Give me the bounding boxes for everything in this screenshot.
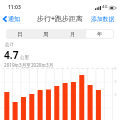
staticText: 通知 <box>8 15 21 23</box>
button[interactable]: 周 <box>33 30 59 38</box>
staticText: 年 <box>97 31 103 38</box>
staticText: 4.7 <box>4 48 19 62</box>
staticText: 总计 <box>5 42 14 48</box>
button[interactable]: 日 <box>7 30 33 38</box>
staticText: 步行+跑步距离 <box>37 14 84 24</box>
staticText: 日 <box>17 31 23 38</box>
staticText: 2019年3月至2020年3月 <box>4 62 54 68</box>
staticText: 公里 <box>20 55 30 61</box>
button[interactable]: 添加数据 <box>91 15 115 22</box>
staticText: 周 <box>43 31 49 38</box>
button[interactable]: 通知 <box>2 14 22 24</box>
staticText: 月 <box>70 31 76 38</box>
button[interactable]: 月 <box>59 30 86 38</box>
staticText: 11:03 <box>8 4 21 11</box>
button[interactable]: 年 <box>86 30 113 38</box>
staticText: 4G <box>102 4 108 10</box>
